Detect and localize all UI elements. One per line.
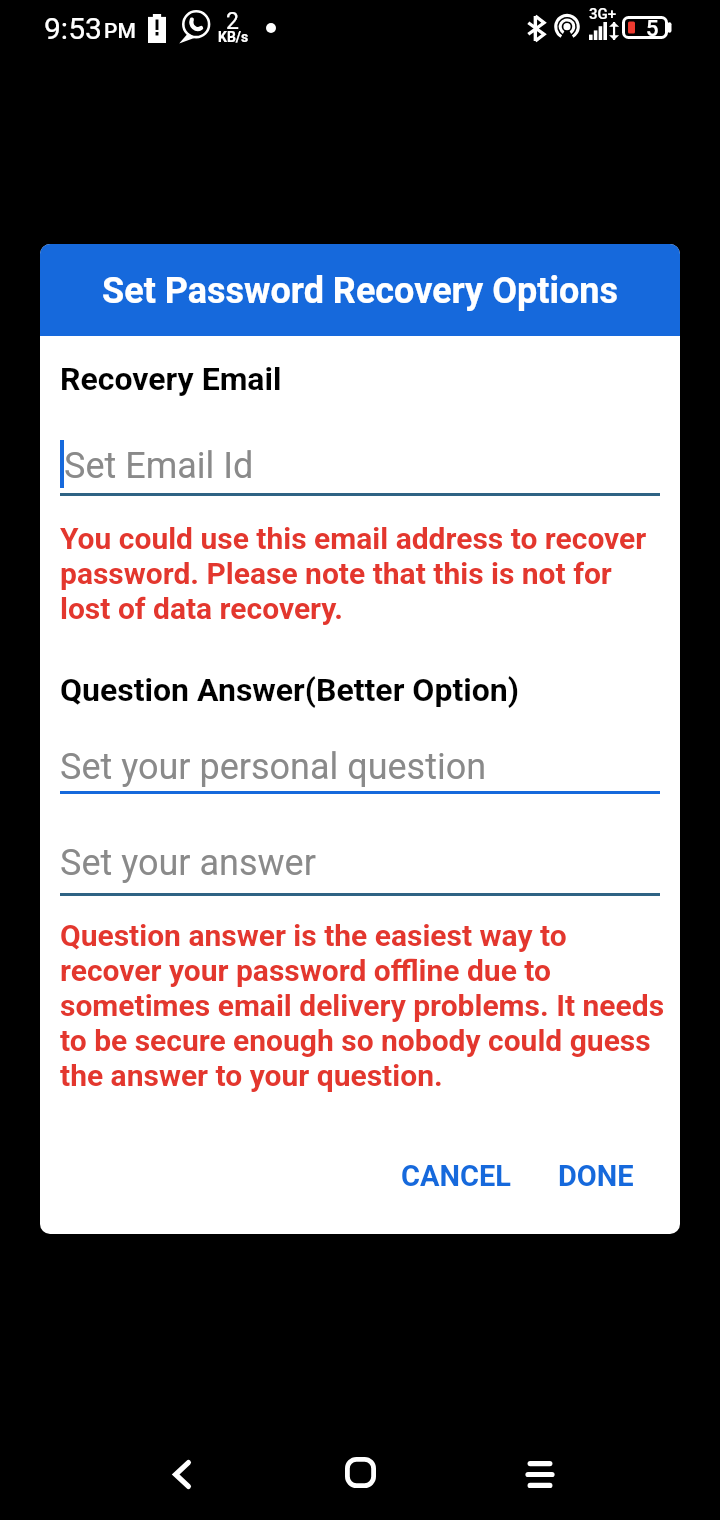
staticText: Set your answer — [60, 842, 316, 884]
staticText: 5 — [646, 16, 659, 42]
staticText: 9:53 — [44, 11, 102, 46]
button[interactable]: DONE — [544, 1143, 648, 1209]
staticText: Set Password Recovery Options — [102, 270, 618, 312]
staticText: 2 — [226, 8, 239, 35]
button[interactable]: CANCEL — [387, 1143, 525, 1209]
staticText: PM — [104, 19, 136, 44]
staticText: 3G+ — [589, 5, 617, 23]
staticText: Question Answer(Better Option) — [60, 671, 519, 709]
button[interactable]: Recent apps — [492, 1424, 588, 1520]
button[interactable]: Set your personal question — [60, 733, 660, 794]
button[interactable]: Set your answer — [60, 829, 660, 896]
staticText: KB/s — [218, 29, 249, 45]
button[interactable]: Home — [312, 1422, 408, 1520]
staticText: DONE — [558, 1159, 634, 1193]
staticText: Set your personal question — [60, 746, 487, 788]
staticText: You could use this email address to reco… — [60, 521, 661, 626]
staticText: Question answer is the easiest way to re… — [60, 918, 670, 1093]
staticText: CANCEL — [401, 1159, 511, 1193]
button[interactable]: Back — [132, 1424, 228, 1520]
staticText: Recovery Email — [60, 360, 282, 398]
button[interactable]: Set Email Id — [60, 432, 660, 496]
staticText: Set Email Id — [64, 445, 254, 487]
